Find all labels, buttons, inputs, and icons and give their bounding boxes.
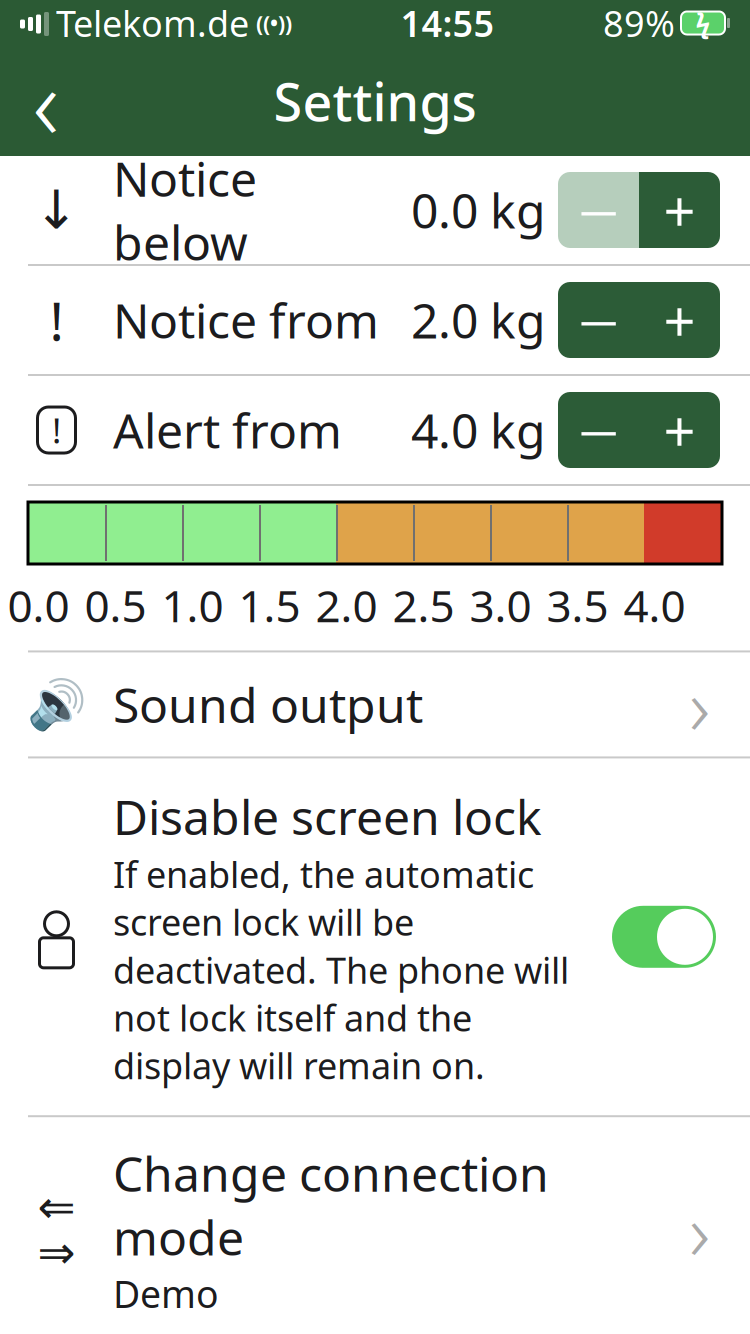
staticText: ⇒ <box>37 1227 75 1278</box>
staticText: + <box>663 393 695 467</box>
button[interactable]: ↓ <box>0 156 750 264</box>
staticText: 0.0 <box>7 576 69 634</box>
staticText: 89% <box>603 0 675 47</box>
staticText: Change connection mode <box>113 1141 549 1269</box>
button[interactable]: 🔊 <box>0 652 750 756</box>
button[interactable]: Disable screen lock <box>0 758 750 1115</box>
staticText: Demo <box>113 1269 219 1318</box>
staticText: Notice from <box>113 288 379 352</box>
button[interactable]: ! <box>0 266 750 374</box>
staticText: › <box>689 1177 710 1283</box>
staticText: 4.0 kg <box>411 398 546 462</box>
staticText: ((•)) <box>256 9 292 37</box>
staticText: › <box>689 651 710 757</box>
staticText: ϟ <box>695 5 710 41</box>
staticText: If enabled, the automatic screen lock wi… <box>113 850 569 1089</box>
staticText: Alert from <box>113 398 342 462</box>
staticText: Telekom.de <box>56 0 249 47</box>
staticText: Notice below <box>113 146 257 274</box>
staticText: 3.5 <box>546 576 608 634</box>
staticText: ‹ <box>32 34 59 168</box>
staticText: ↓ <box>34 180 79 240</box>
staticText: Sound output <box>113 673 423 736</box>
staticText: 0.5 <box>84 576 146 634</box>
staticText: 4.0 <box>623 576 685 634</box>
staticText: 1.0 <box>161 576 223 634</box>
staticText: Disable screen lock <box>113 784 542 848</box>
button[interactable]: Back <box>0 50 92 152</box>
staticText: + <box>663 283 695 357</box>
staticText: ⇐ <box>37 1181 75 1233</box>
staticText: — <box>580 295 617 345</box>
staticText: 2.0 kg <box>411 288 546 352</box>
staticText: Settings <box>273 66 476 136</box>
staticText: 2.5 <box>392 576 454 634</box>
button[interactable]: ⇐ <box>0 1117 750 1334</box>
staticText: 🔊 <box>26 677 86 732</box>
staticText: 0.0 kg <box>411 178 546 242</box>
staticText: ! <box>52 407 61 453</box>
staticText: — <box>580 185 617 235</box>
button[interactable]: ! <box>0 376 750 484</box>
staticText: + <box>663 173 695 247</box>
staticText: 2.0 <box>315 576 377 634</box>
staticText: ! <box>49 285 63 355</box>
staticText: 1.5 <box>238 576 300 634</box>
staticText: — <box>580 405 617 455</box>
staticText: 3.0 <box>469 576 531 634</box>
staticText: 14:55 <box>400 0 494 47</box>
